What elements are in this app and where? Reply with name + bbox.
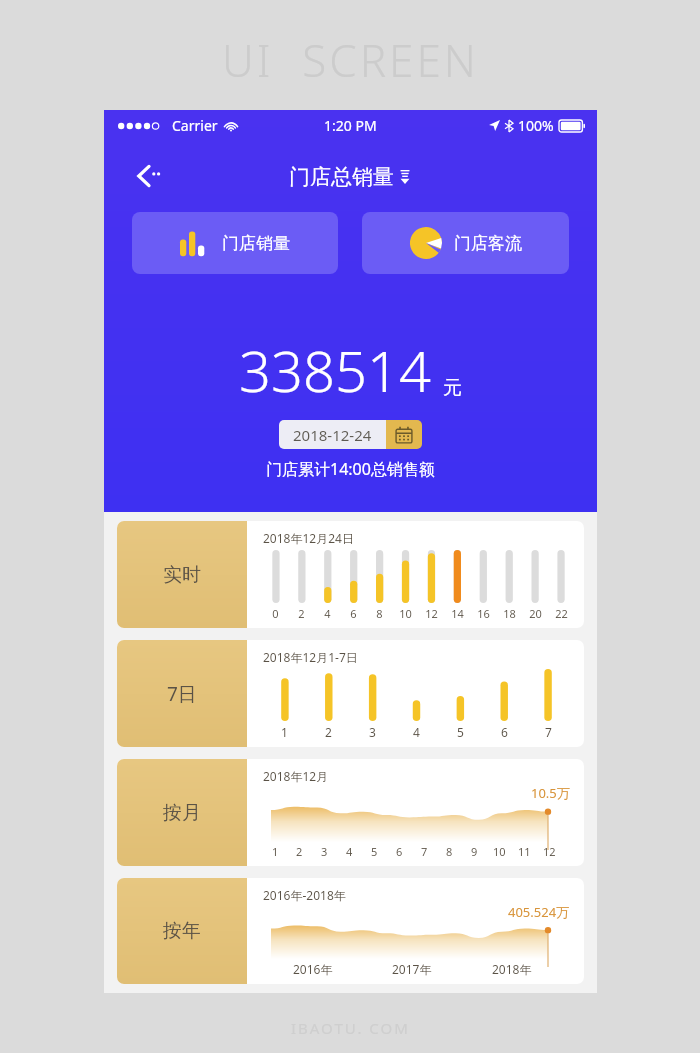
staticText: 3 — [369, 724, 376, 740]
staticText: 2018年12月1-7日 — [263, 649, 358, 665]
staticText: 11 — [518, 844, 531, 859]
staticText: 2018-12-24 — [293, 425, 372, 445]
staticText: 实时 — [163, 563, 201, 587]
button[interactable]: 2018-12-24 — [279, 420, 422, 449]
staticText: 22 — [555, 606, 568, 621]
staticText: 2 — [325, 724, 332, 740]
staticText: IBAOTU. COM — [291, 1018, 410, 1038]
staticText: 2 — [298, 606, 305, 621]
staticText: 2017年 — [392, 961, 432, 977]
staticText: 20 — [529, 606, 542, 621]
staticText: 2016年-2018年 — [263, 887, 346, 903]
staticText: 7日 — [167, 681, 197, 707]
staticText: 8 — [376, 606, 383, 621]
staticText: 6 — [350, 606, 357, 621]
staticText: 18 — [503, 606, 516, 621]
staticText: Carrier — [172, 116, 218, 135]
staticText: 3 — [321, 844, 328, 859]
staticText: 按月 — [163, 801, 201, 825]
staticText: 门店销量 — [222, 233, 290, 254]
staticText: 405.524万 — [508, 903, 570, 921]
staticText: 1 — [272, 844, 279, 859]
staticText: 14 — [451, 606, 464, 621]
staticText: 2016年 — [293, 961, 333, 977]
staticText: 10.5万 — [531, 784, 570, 802]
staticText: 门店总销量 — [289, 164, 394, 190]
staticText: 按年 — [163, 919, 201, 943]
staticText: 2 — [296, 844, 303, 859]
button[interactable]: Back — [124, 154, 168, 198]
staticText: 4 — [324, 606, 331, 621]
staticText: 5 — [457, 724, 464, 740]
staticText: 100% — [518, 116, 554, 135]
button[interactable]: 按月 — [117, 759, 584, 866]
staticText: 6 — [501, 724, 508, 740]
button[interactable]: 实时 — [117, 521, 584, 628]
staticText: 门店客流 — [454, 233, 522, 254]
staticText: 4 — [346, 844, 353, 859]
button[interactable]: 门店销量 — [132, 212, 338, 274]
staticText: 2018年12月 — [263, 768, 329, 784]
staticText: 7 — [421, 844, 428, 859]
button[interactable]: 按年 — [117, 878, 584, 984]
staticText: 6 — [396, 844, 403, 859]
staticText: 7 — [545, 724, 552, 740]
staticText: 10 — [493, 844, 506, 859]
staticText: 1 — [281, 724, 288, 740]
staticText: 元 — [443, 376, 462, 400]
staticText: 1:20 PM — [324, 116, 377, 135]
staticText: 10 — [399, 606, 412, 621]
staticText: 16 — [477, 606, 490, 621]
staticText: 2018年12月24日 — [263, 530, 354, 546]
staticText: 5 — [371, 844, 378, 859]
button[interactable]: 门店客流 — [362, 212, 569, 274]
staticText: 2018年 — [492, 961, 532, 977]
staticText: 8 — [446, 844, 453, 859]
staticText: 0 — [272, 606, 279, 621]
button[interactable]: 7日 — [117, 640, 584, 747]
staticText: UI SCREEN — [222, 30, 479, 90]
staticText: 338514 — [239, 332, 431, 408]
staticText: 12 — [543, 844, 556, 859]
staticText: 4 — [413, 724, 420, 740]
staticText: 门店累计14:00总销售额 — [266, 458, 435, 480]
staticText: 9 — [471, 844, 478, 859]
staticText: 12 — [425, 606, 438, 621]
button[interactable]: 门店总销量 — [289, 164, 412, 190]
